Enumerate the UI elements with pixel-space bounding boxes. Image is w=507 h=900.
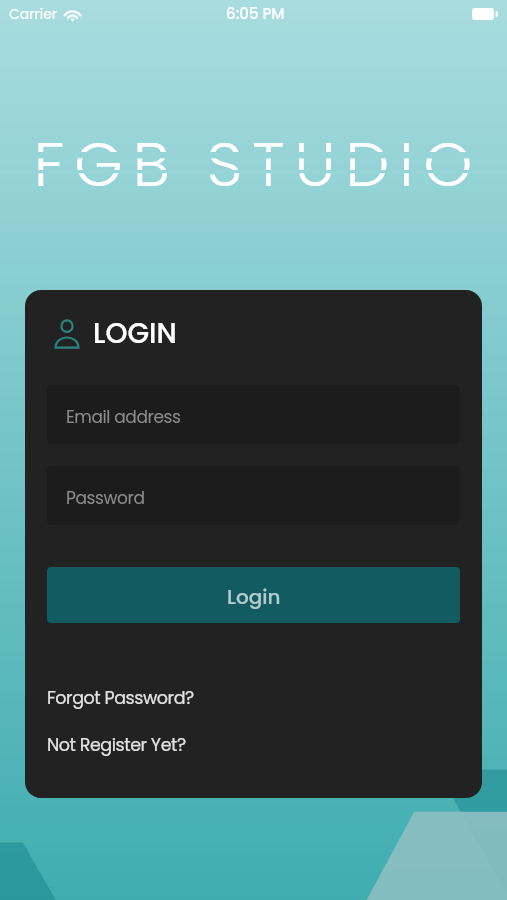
button[interactable]: Email address — [47, 385, 460, 444]
staticText: Password — [66, 486, 145, 510]
other: Wi-Fi — [63, 7, 82, 22]
button[interactable]: Login — [47, 567, 460, 623]
staticText: LOGIN — [93, 314, 177, 353]
staticText: Carrier — [9, 4, 58, 24]
staticText: Not Register Yet? — [47, 733, 186, 758]
other: Battery — [472, 8, 498, 20]
staticText: Login — [227, 583, 281, 611]
staticText: Forgot Password? — [47, 686, 194, 711]
staticText: FGB STUDIO — [9, 121, 507, 197]
staticText: 6:05 PM — [226, 3, 285, 24]
button[interactable]: Forgot Password? — [47, 686, 194, 711]
button[interactable]: Password — [47, 466, 460, 525]
button[interactable]: Not Register Yet? — [47, 733, 186, 758]
staticText: Email address — [66, 405, 181, 429]
